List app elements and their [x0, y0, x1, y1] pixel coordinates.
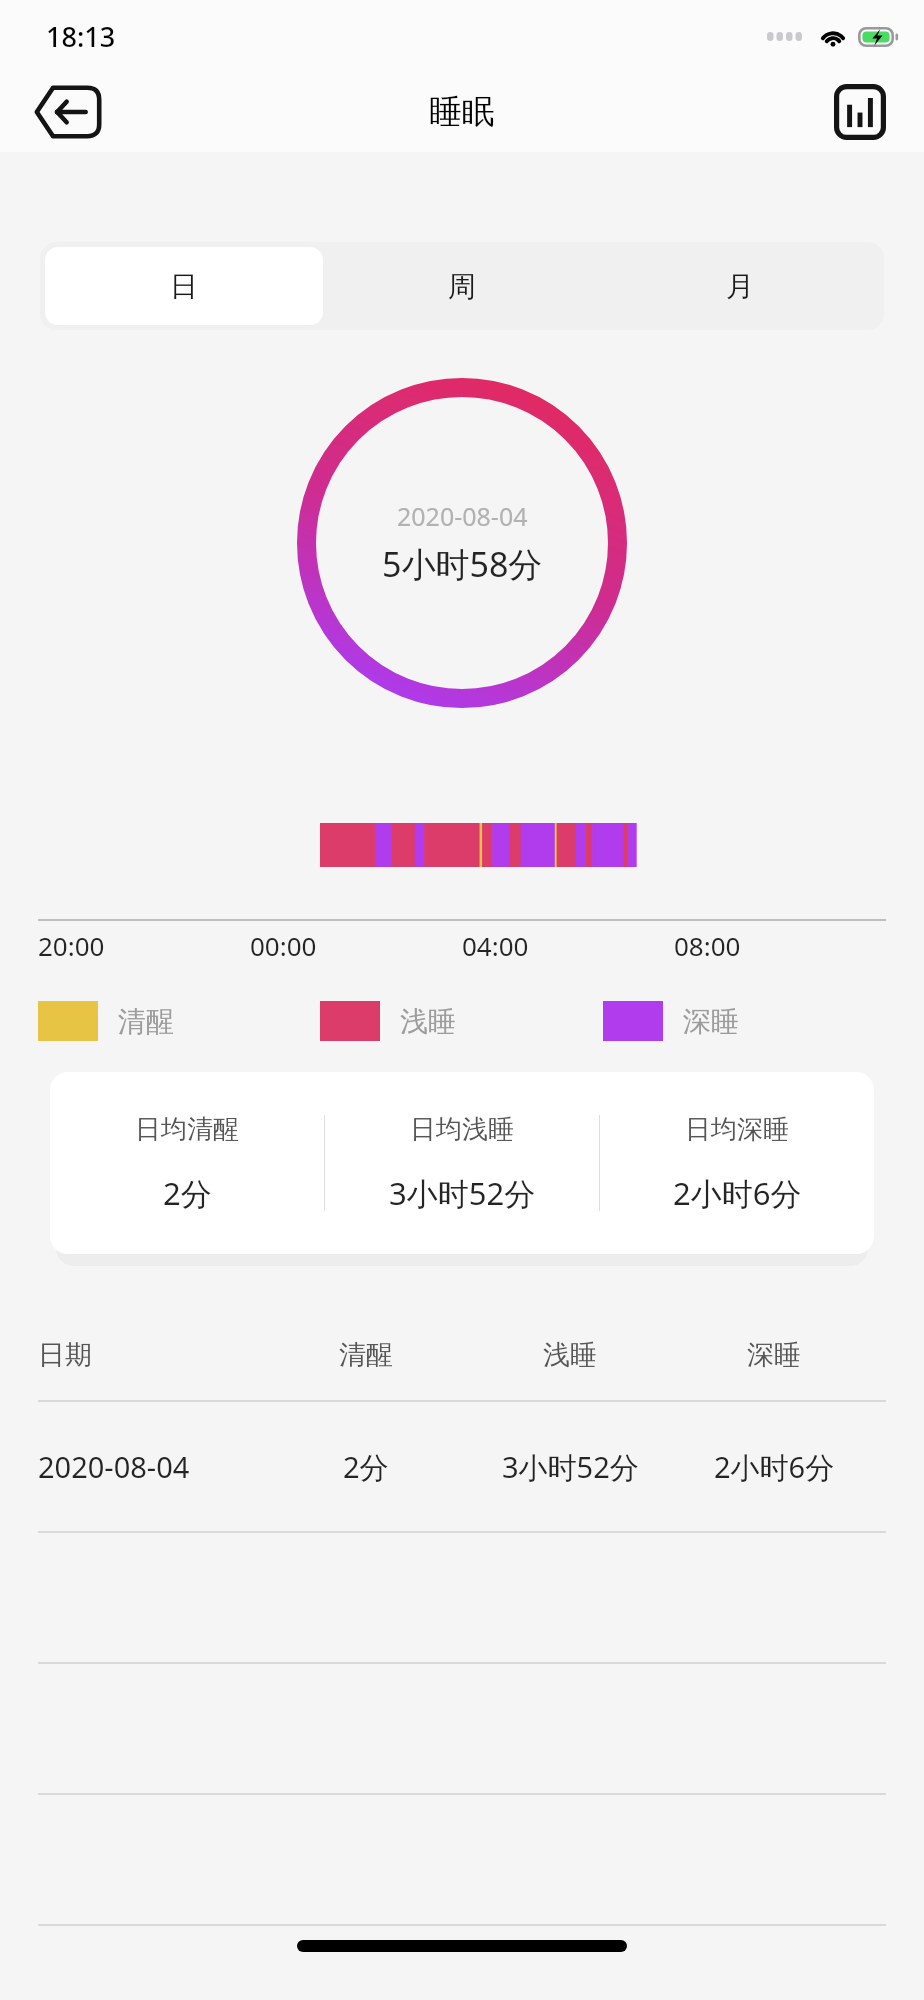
staticText: 清醒 — [339, 1338, 393, 1372]
staticText: 00:00 — [250, 928, 317, 963]
staticText: 月 — [726, 269, 754, 304]
staticText: 深睡 — [747, 1338, 801, 1372]
button[interactable]: 日 — [45, 247, 323, 325]
button[interactable]: 深睡 — [603, 995, 886, 1047]
staticText: 18:13 — [46, 18, 116, 55]
button[interactable]: Statistics — [828, 80, 892, 144]
button[interactable]: Back — [32, 83, 104, 141]
staticText: 浅睡 — [400, 1004, 456, 1039]
staticText: 日 — [170, 269, 198, 304]
button[interactable]: 清醒 — [38, 995, 320, 1047]
staticText: 日期 — [38, 1338, 92, 1372]
button[interactable]: 日均深睡 — [600, 1072, 874, 1254]
staticText: 日均深睡 — [685, 1113, 789, 1146]
button[interactable]: 月 — [601, 247, 879, 325]
staticText: 20:00 — [38, 928, 105, 963]
staticText: 日均浅睡 — [410, 1113, 514, 1146]
staticText: 2020-08-04 — [38, 1447, 190, 1486]
staticText: 浅睡 — [543, 1338, 597, 1372]
button[interactable]: 日均清醒 — [50, 1072, 324, 1254]
staticText: 2分 — [163, 1172, 212, 1214]
button[interactable]: 2020-08-04 — [38, 1402, 876, 1531]
staticText: 2小时6分 — [673, 1172, 802, 1214]
button[interactable]: 日均浅睡 — [325, 1072, 599, 1254]
staticText: 04:00 — [462, 928, 529, 963]
staticText: 2分 — [343, 1447, 389, 1487]
staticText: 08:00 — [674, 928, 741, 963]
staticText: 清醒 — [118, 1004, 174, 1039]
button[interactable]: 周 — [323, 247, 601, 325]
staticText: 3小时52分 — [502, 1447, 639, 1487]
button[interactable]: 浅睡 — [320, 995, 603, 1047]
staticText: 睡眠 — [429, 91, 495, 133]
staticText: 2020-08-04 — [397, 499, 528, 533]
staticText: 3小时52分 — [389, 1172, 536, 1214]
staticText: 周 — [448, 269, 476, 304]
staticText: 5小时58分 — [382, 541, 543, 587]
staticText: 日均清醒 — [135, 1113, 239, 1146]
staticText: 深睡 — [683, 1004, 739, 1039]
staticText: 2小时6分 — [714, 1447, 835, 1487]
